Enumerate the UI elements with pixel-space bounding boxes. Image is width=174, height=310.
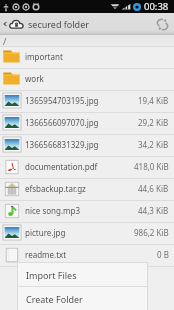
staticText: important xyxy=(25,51,169,62)
staticText: 1366566831329.jpg xyxy=(25,139,138,150)
staticText: 44,6 KiB xyxy=(138,183,169,194)
staticText: 19,4 KiB xyxy=(138,95,169,106)
staticText: 44,3 KiB xyxy=(138,205,169,216)
button[interactable]: / xyxy=(0,35,174,47)
staticText: / xyxy=(3,35,7,47)
button[interactable]: secured folder xyxy=(0,13,93,35)
staticText: Import Files xyxy=(26,269,77,281)
staticText: readme.txt xyxy=(25,249,157,260)
button[interactable]: important xyxy=(0,47,174,69)
staticText: documentation.pdf xyxy=(25,161,134,172)
button[interactable]: Create Folder xyxy=(17,287,148,310)
button[interactable]: work xyxy=(0,69,174,91)
button[interactable]: documentation.pdf xyxy=(0,157,174,179)
staticText: 0 B xyxy=(157,249,169,260)
button[interactable]: nice song.mp3 xyxy=(0,201,174,223)
staticText: work xyxy=(25,73,169,84)
staticText: 34,2 KiB xyxy=(138,139,169,150)
button[interactable]: Import Files xyxy=(17,263,148,286)
staticText: efsbackup.tar.gz xyxy=(25,183,138,194)
staticText: 00:38 xyxy=(144,0,169,13)
button[interactable]: efsbackup.tar.gz xyxy=(0,179,174,201)
staticText: secured folder xyxy=(28,18,89,30)
staticText: nice song.mp3 xyxy=(25,205,138,216)
staticText: Create Folder xyxy=(26,293,83,305)
button[interactable]: 1365954703195.jpg xyxy=(0,91,174,113)
staticText: 29,2 KiB xyxy=(138,117,169,128)
staticText: 418,0 KiB xyxy=(134,161,169,172)
staticText: picture.jpg xyxy=(25,227,134,238)
button[interactable]: picture.jpg xyxy=(0,223,174,245)
staticText: 986,2 KiB xyxy=(134,227,169,238)
button[interactable]: readme.txt xyxy=(0,245,174,267)
staticText: 1365954703195.jpg xyxy=(25,95,138,106)
button[interactable]: Sync xyxy=(150,13,174,35)
button[interactable]: 1366566831329.jpg xyxy=(0,135,174,157)
staticText: 1366566097070.jpg xyxy=(25,117,138,128)
button[interactable]: 1366566097070.jpg xyxy=(0,113,174,135)
